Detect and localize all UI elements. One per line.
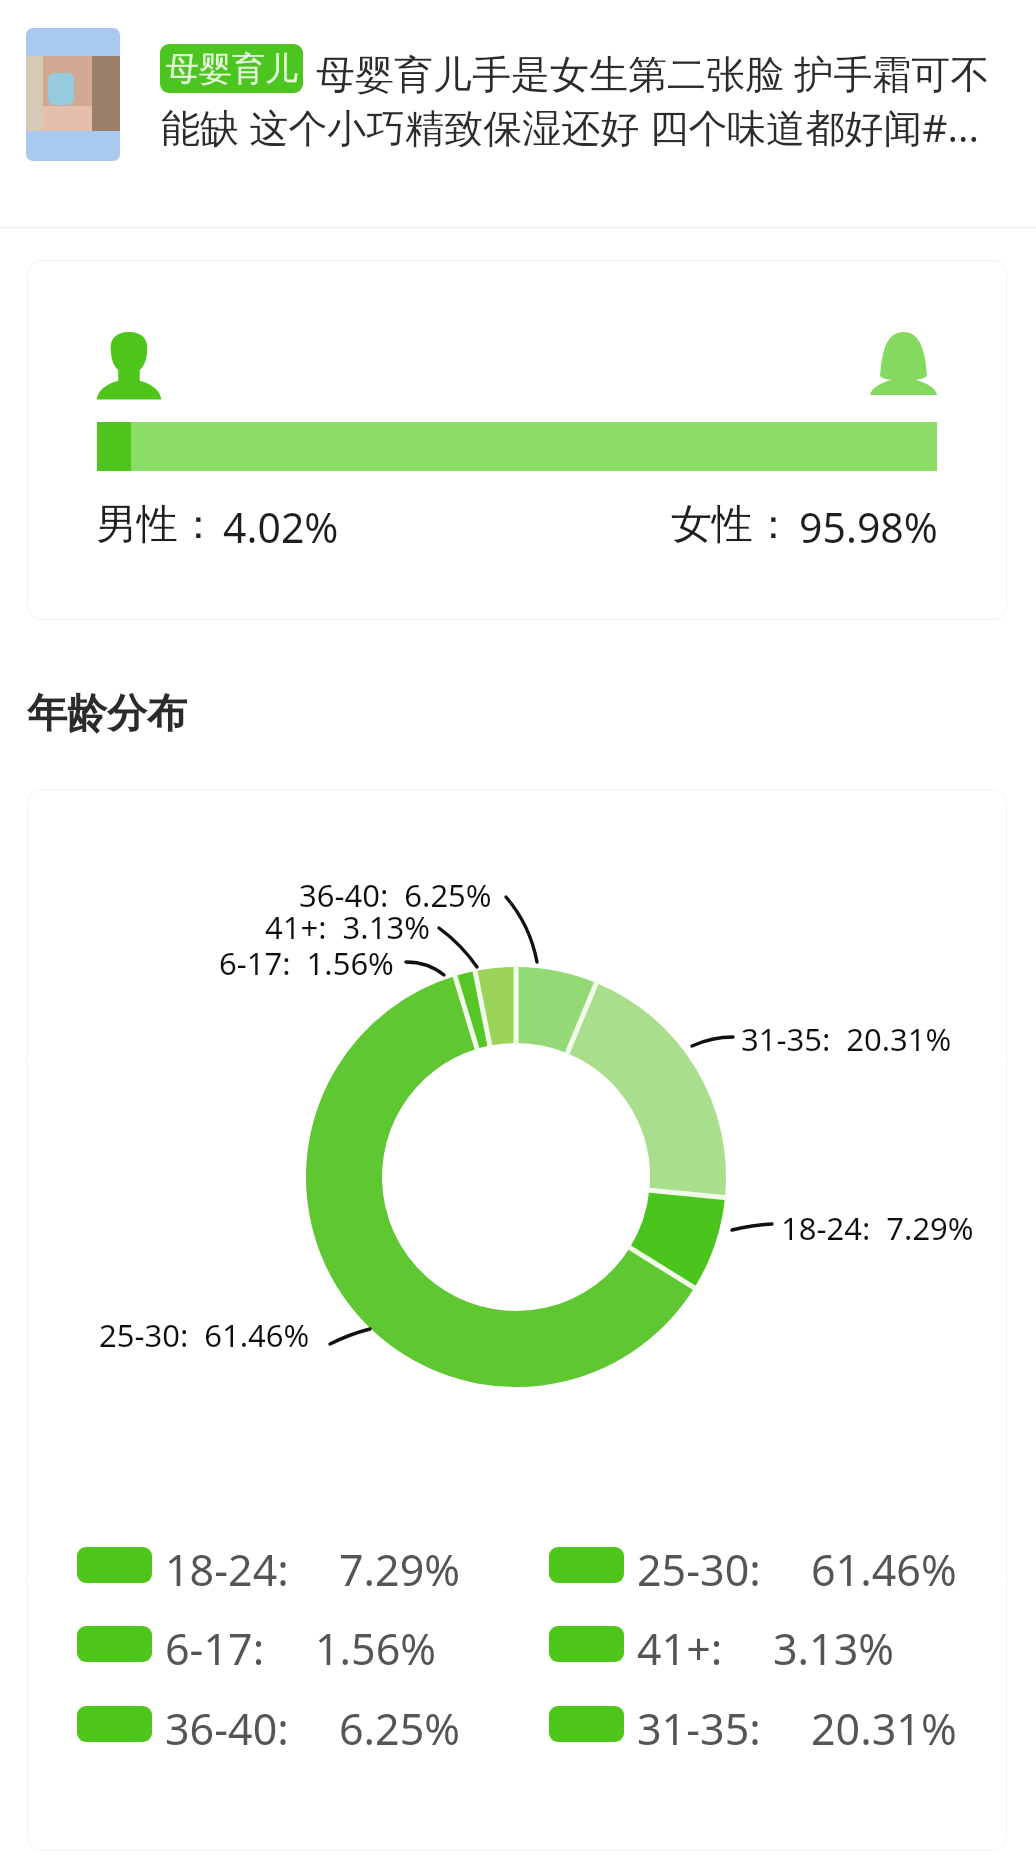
- staticText: 6.25%: [339, 1699, 461, 1749]
- staticText: 61.46%: [811, 1540, 957, 1590]
- staticText: 41+:: [637, 1619, 723, 1669]
- other: Video thumbnail: [26, 28, 120, 161]
- staticText: 7.29%: [339, 1540, 461, 1590]
- staticText: 女性：: [671, 499, 794, 551]
- staticText: 男性：: [96, 499, 219, 551]
- staticText: 36-40: 6.25%: [299, 874, 492, 916]
- staticText: 3.13%: [773, 1619, 895, 1669]
- staticText: 95.98%: [799, 499, 938, 555]
- staticText: 31-35: 20.31%: [741, 1018, 952, 1060]
- button[interactable]: 36-40:: [77, 1699, 461, 1749]
- button[interactable]: 男性：: [27, 260, 1007, 620]
- button[interactable]: 母婴育儿: [160, 44, 303, 93]
- staticText: 41+: 3.13%: [265, 906, 430, 948]
- staticText: 31-35:: [637, 1699, 761, 1749]
- button[interactable]: 36-40: 6.25%: [27, 789, 1007, 1851]
- button[interactable]: 41+:: [549, 1619, 895, 1669]
- staticText: 18-24: 7.29%: [781, 1207, 974, 1249]
- staticText: 25-30: 61.46%: [99, 1314, 310, 1356]
- button[interactable]: Video thumbnail: [0, 0, 1036, 228]
- staticText: 年龄分布: [27, 688, 187, 738]
- staticText: 6-17:: [165, 1619, 265, 1669]
- staticText: 母婴育儿手是女生第二张脸 护手霜可不: [316, 46, 990, 99]
- staticText: 4.02%: [223, 499, 339, 555]
- staticText: 36-40:: [165, 1699, 289, 1749]
- staticText: 20.31%: [811, 1699, 957, 1749]
- button[interactable]: 31-35:: [549, 1699, 957, 1749]
- staticText: 18-24:: [165, 1540, 289, 1590]
- staticText: 25-30:: [637, 1540, 761, 1590]
- staticText: 母婴育儿: [166, 48, 298, 90]
- button[interactable]: 6-17:: [77, 1619, 437, 1669]
- staticText: 能缺 这个小巧精致保湿还好 四个味道都好闻#...: [161, 100, 979, 153]
- button[interactable]: 25-30:: [549, 1540, 957, 1590]
- staticText: 6-17: 1.56%: [219, 942, 394, 984]
- button[interactable]: 18-24:: [77, 1540, 461, 1590]
- staticText: 1.56%: [315, 1619, 437, 1669]
